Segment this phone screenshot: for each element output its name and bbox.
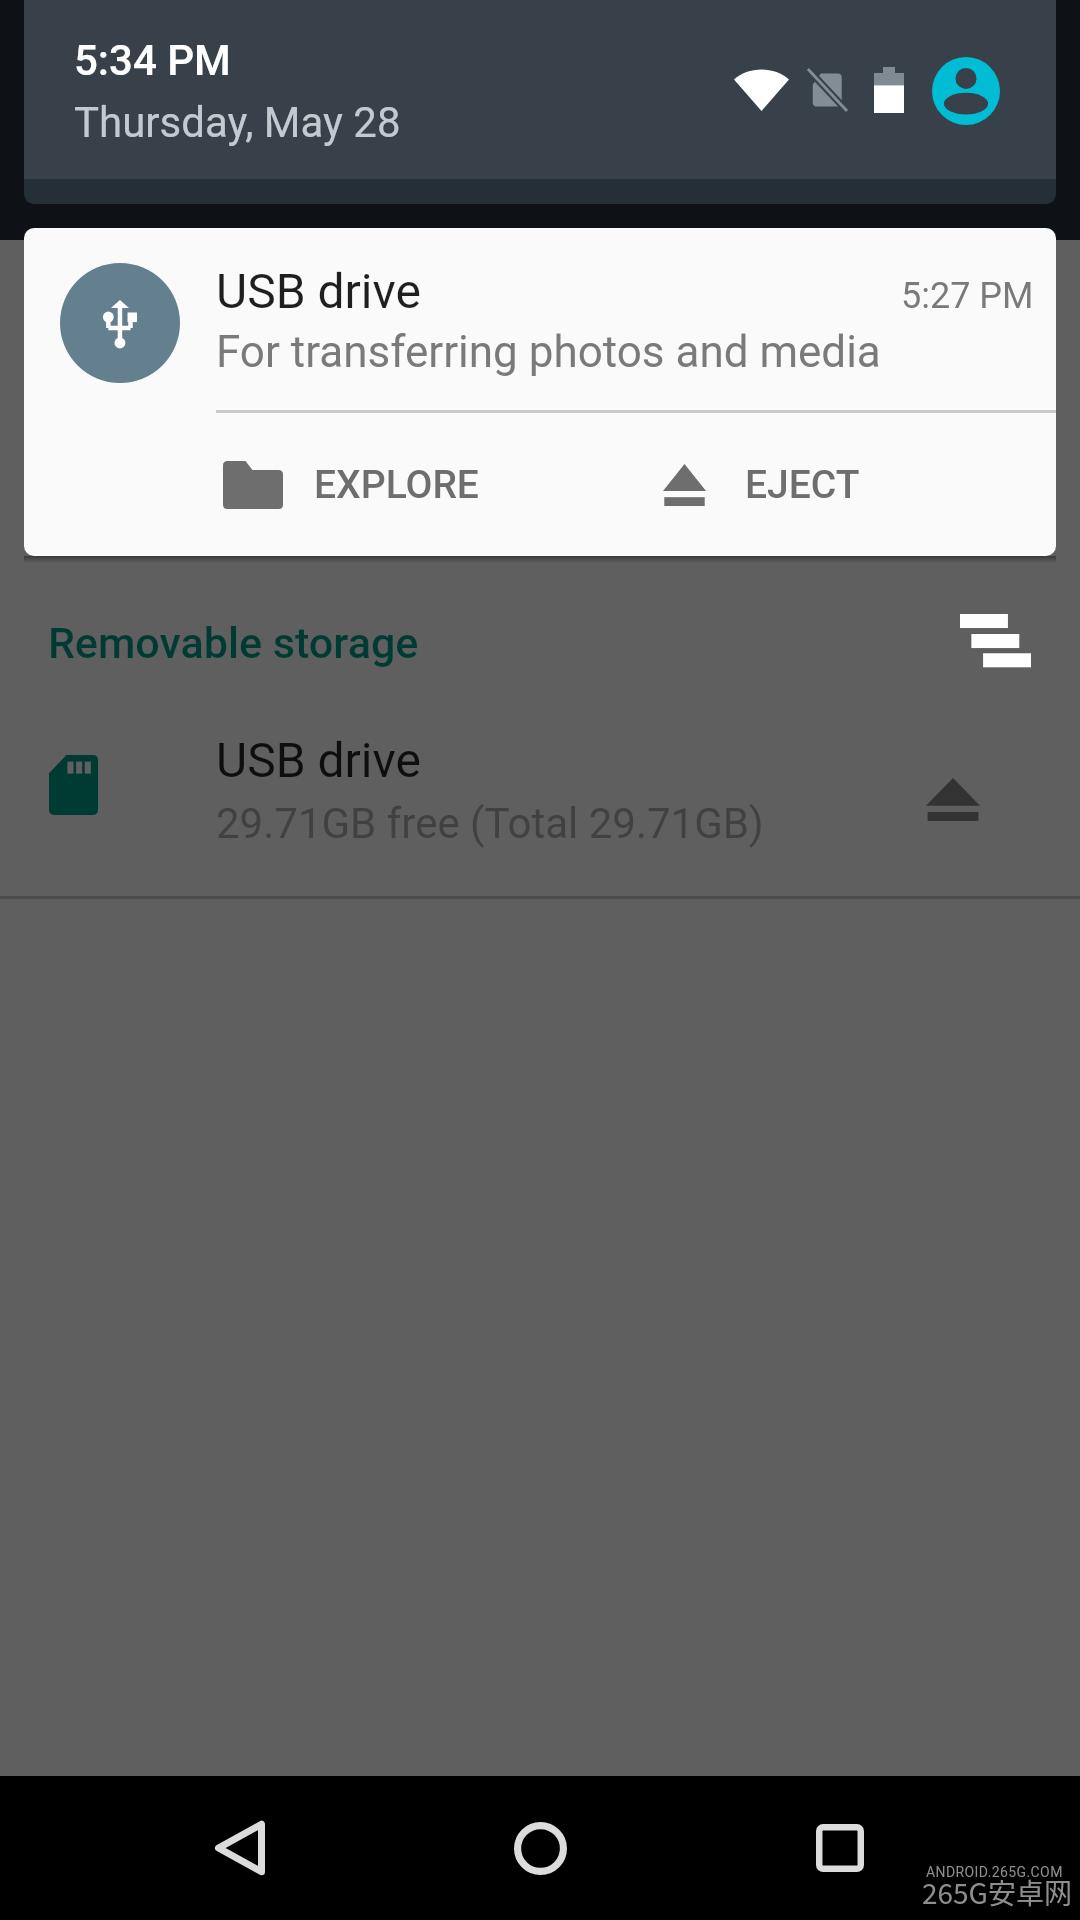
staticText: For transferring photos and media [216, 326, 881, 378]
button[interactable]: Back [180, 1788, 300, 1908]
staticText: Thursday, May 28 [74, 98, 401, 147]
button[interactable]: Sort [930, 588, 1060, 692]
staticText: 29.71GB free (Total 29.71GB) [216, 799, 764, 848]
staticText: 5:27 PM [901, 275, 1034, 317]
button[interactable]: Home [480, 1788, 600, 1908]
staticText: USB drive [216, 732, 421, 788]
staticText: Removable storage [48, 618, 419, 668]
staticText: 265G安卓网 [922, 1872, 1072, 1913]
staticText: EXPLORE [314, 462, 479, 508]
staticText: EJECT [745, 462, 860, 508]
button[interactable]: USB drive [0, 710, 1080, 896]
staticText: ANDROID.265G.COM [926, 1864, 1063, 1880]
button[interactable]: User profile [916, 41, 1016, 141]
button[interactable]: Recent apps [780, 1788, 900, 1908]
staticText: 5:34 PM [74, 36, 231, 85]
button[interactable]: USB drive [24, 228, 1056, 556]
button[interactable]: EJECT [639, 428, 929, 548]
button[interactable]: EXPLORE [199, 428, 529, 548]
button[interactable]: Eject USB drive [896, 744, 1010, 854]
staticText: USB drive [216, 263, 421, 319]
